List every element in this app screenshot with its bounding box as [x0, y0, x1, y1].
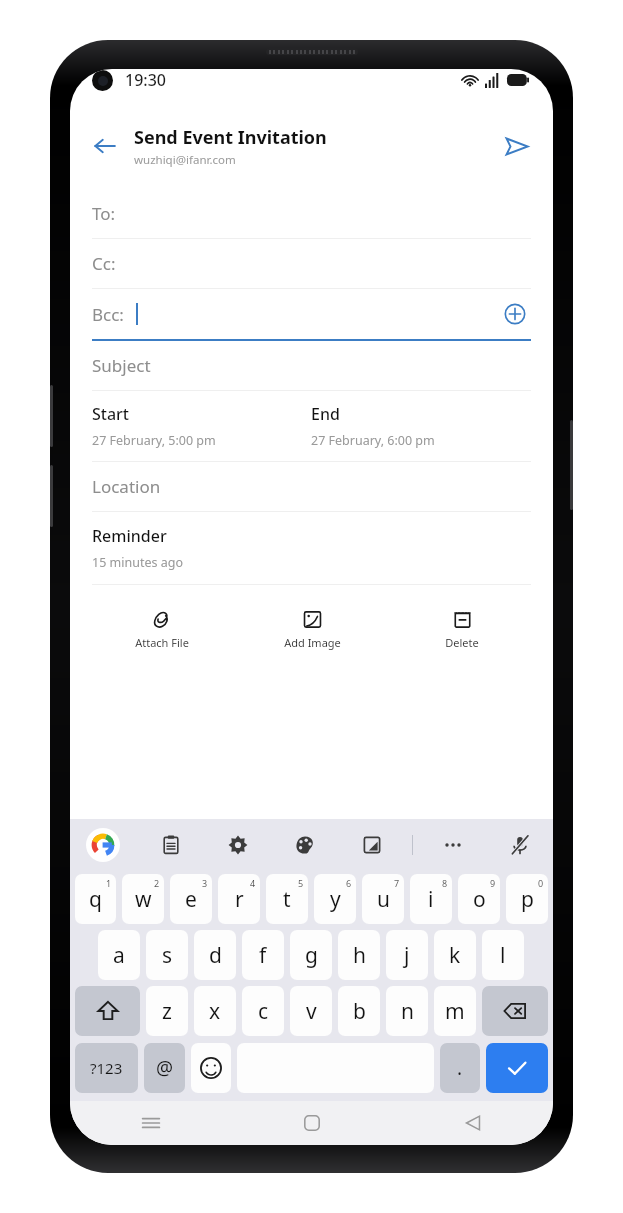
staticText: Delete [445, 635, 479, 650]
button[interactable]: e [170, 874, 212, 924]
button[interactable]: x [194, 986, 236, 1036]
button[interactable]: z [146, 986, 188, 1036]
button[interactable]: Location [70, 462, 553, 512]
staticText: k [449, 941, 461, 970]
button[interactable]: Settings [221, 828, 255, 862]
button[interactable]: Home [231, 1101, 392, 1145]
button[interactable]: u [362, 874, 404, 924]
staticText: r [235, 885, 244, 914]
staticText: a [113, 941, 125, 970]
button[interactable]: c [242, 986, 284, 1036]
button[interactable]: Back [84, 125, 126, 167]
staticText: wuzhiqi@ifanr.com [134, 152, 236, 168]
staticText: z [162, 997, 172, 1026]
button[interactable]: Add Image [237, 610, 387, 650]
staticText: 9 [490, 877, 496, 889]
button[interactable]: Clipboard [154, 828, 188, 862]
staticText: Send Event Invitation [134, 125, 327, 150]
button[interactable]: s [146, 930, 188, 980]
button[interactable]: m [434, 986, 476, 1036]
button[interactable]: Send [495, 125, 537, 167]
staticText: Subject [92, 354, 151, 377]
staticText: 4 [250, 877, 256, 889]
staticText: d [209, 941, 222, 970]
button[interactable]: End [311, 403, 531, 449]
staticText: ?123 [90, 1058, 123, 1078]
button[interactable]: Reminder [70, 512, 553, 585]
button[interactable]: b [338, 986, 380, 1036]
button[interactable]: n [386, 986, 428, 1036]
staticText: y [330, 885, 341, 914]
staticText: g [305, 941, 318, 970]
button[interactable]: h [338, 930, 380, 980]
staticText: b [353, 997, 366, 1026]
button[interactable]: Recents [70, 1101, 231, 1145]
button[interactable]: To: [70, 189, 553, 239]
button[interactable]: Start [92, 403, 311, 449]
button[interactable]: Emoji [191, 1043, 231, 1093]
staticText: f [259, 941, 267, 970]
button[interactable]: f [242, 930, 284, 980]
staticText: u [377, 885, 390, 914]
button[interactable]: i [410, 874, 452, 924]
staticText: . [457, 1055, 463, 1081]
staticText: s [162, 941, 173, 970]
button[interactable]: Subject [70, 341, 553, 391]
button[interactable]: Handwriting [355, 828, 389, 862]
staticText: p [521, 885, 534, 914]
button[interactable]: w [122, 874, 164, 924]
button[interactable]: q [75, 874, 116, 924]
button[interactable]: Google [86, 828, 120, 862]
staticText: Start [92, 403, 129, 425]
button[interactable]: Shift [75, 986, 140, 1036]
staticText: 27 February, 6:00 pm [311, 432, 435, 449]
staticText: 7 [394, 877, 400, 889]
button[interactable]: Backspace [482, 986, 548, 1036]
button[interactable]: More [436, 828, 470, 862]
button[interactable]: d [194, 930, 236, 980]
button[interactable]: Back [392, 1101, 553, 1145]
button[interactable]: Delete [387, 610, 537, 650]
button[interactable]: a [98, 930, 140, 980]
button[interactable]: Attach File [86, 610, 237, 650]
staticText: h [353, 941, 366, 970]
staticText: 3 [202, 877, 208, 889]
staticText: 19:30 [125, 69, 166, 91]
button[interactable]: j [386, 930, 428, 980]
button[interactable]: Bcc: [70, 289, 553, 341]
staticText: Location [92, 475, 161, 498]
button[interactable]: Cc: [70, 239, 553, 289]
staticText: n [401, 997, 414, 1026]
button[interactable]: v [290, 986, 332, 1036]
staticText: Cc: [92, 252, 116, 275]
staticText: 15 minutes ago [92, 554, 183, 571]
staticText: Reminder [92, 525, 167, 547]
button[interactable]: p [506, 874, 548, 924]
staticText: e [185, 885, 197, 914]
staticText: l [500, 941, 506, 970]
button[interactable]: Voice off [503, 828, 537, 862]
staticText: c [258, 997, 269, 1026]
button[interactable]: r [218, 874, 260, 924]
button[interactable]: y [314, 874, 356, 924]
button[interactable]: @ [144, 1043, 185, 1093]
staticText: 27 February, 5:00 pm [92, 432, 216, 449]
button[interactable]: k [434, 930, 476, 980]
button[interactable]: l [482, 930, 524, 980]
button[interactable]: ?123 [75, 1043, 138, 1093]
button[interactable]: Add recipient [499, 298, 531, 330]
staticText: 1 [106, 877, 112, 889]
button[interactable]: g [290, 930, 332, 980]
button[interactable]: o [458, 874, 500, 924]
staticText: x [209, 997, 221, 1026]
staticText: 0 [538, 877, 544, 889]
button[interactable]: Themes [288, 828, 322, 862]
button[interactable]: . [440, 1043, 480, 1093]
staticText: Add Image [284, 635, 341, 650]
button[interactable]: Enter [486, 1043, 548, 1093]
staticText: 2 [154, 877, 160, 889]
button[interactable]: t [266, 874, 308, 924]
staticText: m [445, 997, 465, 1026]
staticText: 6 [346, 877, 352, 889]
